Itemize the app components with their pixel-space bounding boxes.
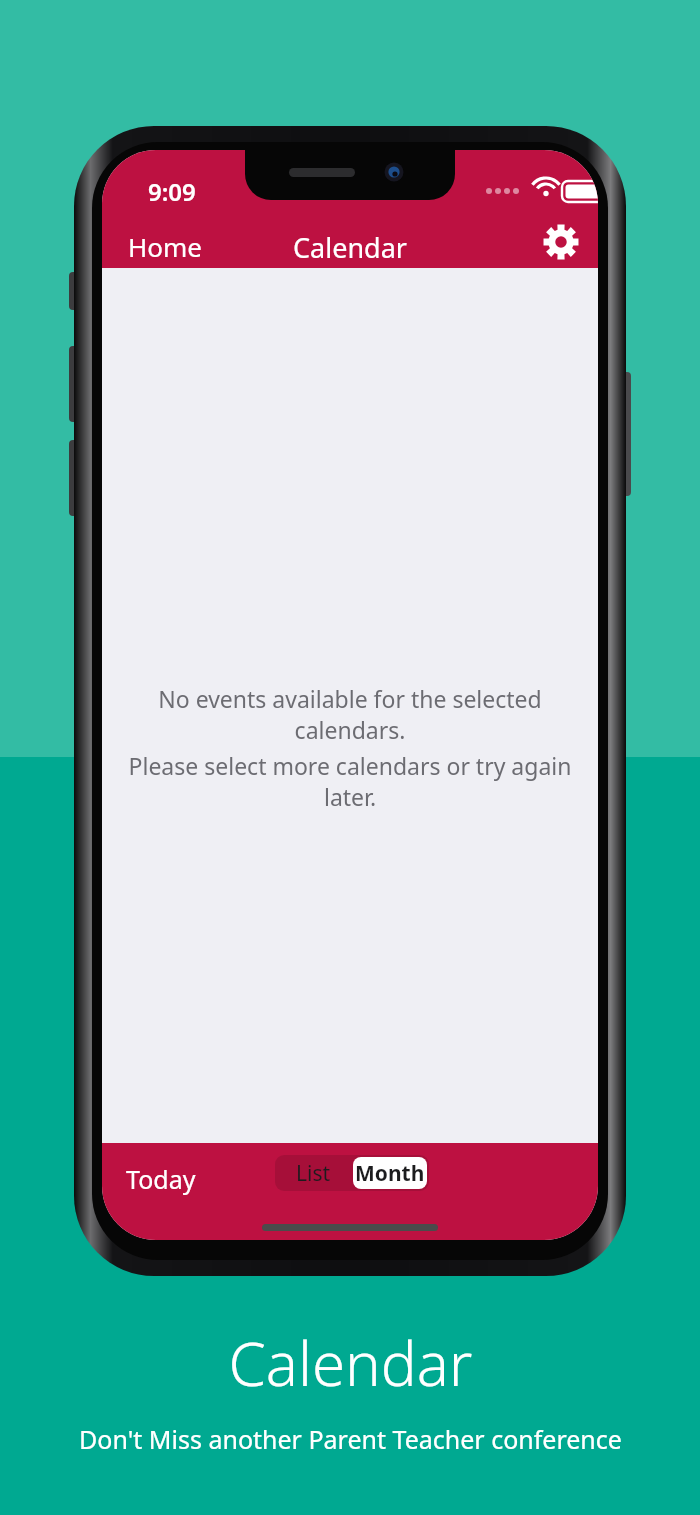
button[interactable]: List <box>275 1155 351 1191</box>
staticText: Month <box>355 1159 425 1188</box>
staticText: Calendar <box>228 1322 473 1404</box>
staticText: Calendar <box>293 229 407 266</box>
staticText: Today <box>126 1162 196 1196</box>
staticText: No events available for the selected cal… <box>102 683 598 745</box>
button[interactable]: Home <box>122 224 208 269</box>
staticText: Please select more calendars or try agai… <box>102 750 598 812</box>
button[interactable]: Today <box>118 1156 204 1202</box>
button[interactable]: Settings <box>537 218 585 266</box>
button[interactable]: Month <box>353 1157 427 1189</box>
staticText: Don't Miss another Parent Teacher confer… <box>79 1422 622 1456</box>
staticText: 9:09 <box>148 175 196 208</box>
staticText: List <box>296 1159 331 1188</box>
staticText: Home <box>128 229 202 264</box>
